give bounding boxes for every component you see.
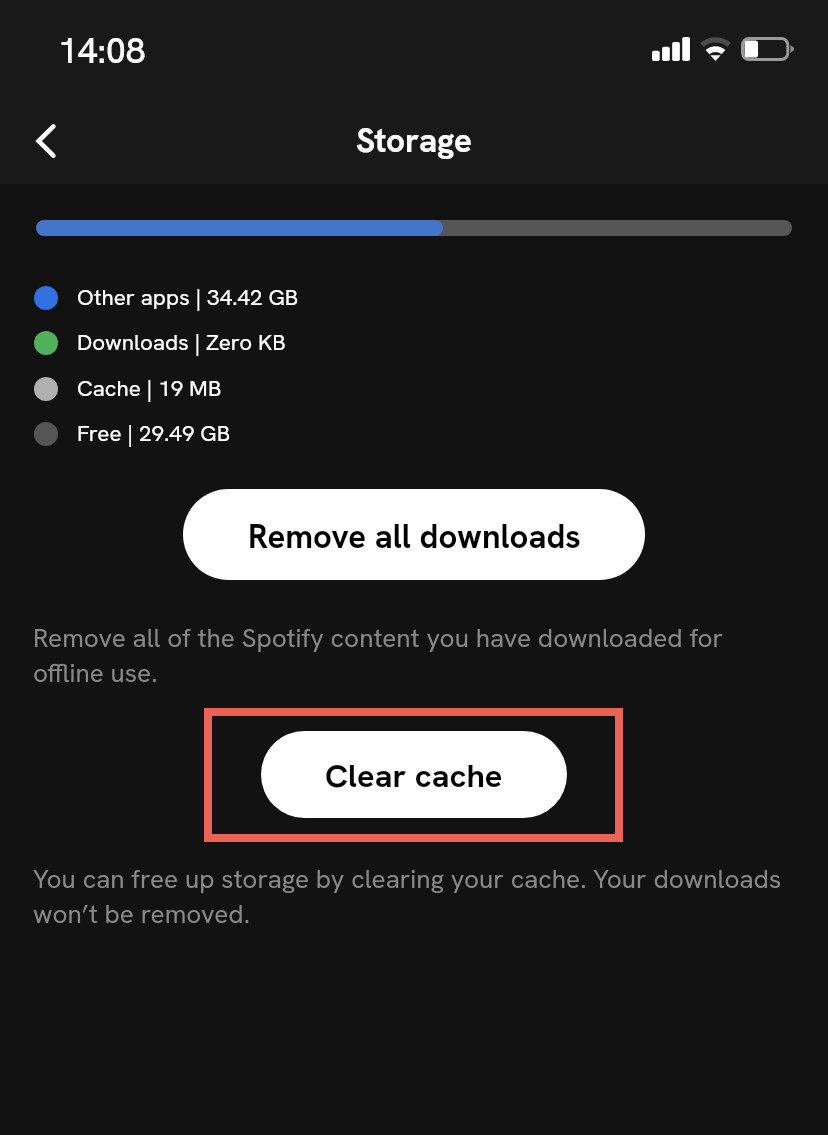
staticText: Other apps | 34.42 GB <box>77 283 299 312</box>
staticText: Storage <box>356 119 472 162</box>
staticText: Downloads | Zero KB <box>77 328 286 357</box>
staticText: Cache | 19 MB <box>77 374 222 403</box>
button[interactable]: Remove all downloads <box>183 489 645 580</box>
button[interactable]: Cache | 19 MB <box>0 365 828 412</box>
staticText: Free | 29.49 GB <box>77 419 231 448</box>
staticText: Remove all of the Spotify content you ha… <box>33 621 785 690</box>
staticText: Remove all downloads <box>248 515 581 558</box>
button[interactable]: Back <box>11 106 81 176</box>
button[interactable]: Other apps | 34.42 GB <box>0 274 828 321</box>
button[interactable]: Clear cache <box>261 731 567 818</box>
staticText: Clear cache <box>325 754 503 796</box>
staticText: You can free up storage by clearing your… <box>33 862 785 931</box>
staticText: 14:08 <box>58 28 146 74</box>
button[interactable]: Free | 29.49 GB <box>0 410 828 457</box>
button[interactable]: Downloads | Zero KB <box>0 319 828 366</box>
